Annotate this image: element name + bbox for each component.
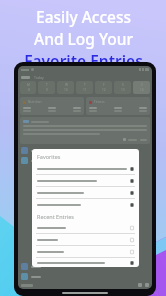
button[interactable]: S (114, 81, 131, 94)
button[interactable] (23, 120, 147, 141)
button[interactable]: Edit (138, 283, 142, 287)
staticText: F (103, 83, 105, 87)
staticText: 12 (102, 88, 106, 92)
button[interactable]: Add entry (32, 258, 139, 267)
staticText: T (46, 83, 48, 87)
button[interactable] (21, 147, 149, 154)
staticText: 10 (64, 88, 68, 92)
button[interactable] (21, 157, 149, 164)
button[interactable]: Add entry (32, 175, 139, 187)
button[interactable]: Delete (145, 283, 149, 287)
staticText: Nutrition (28, 100, 42, 104)
other: Add entry (130, 226, 134, 230)
button[interactable]: W (57, 81, 74, 94)
button[interactable]: Add entry (32, 222, 139, 234)
other: Add entry (130, 261, 134, 265)
staticText: S (122, 83, 124, 87)
staticText: Today (34, 75, 44, 80)
staticText: T (84, 83, 86, 87)
button[interactable]: Add entry (32, 199, 139, 210)
staticText: Favorites (37, 153, 61, 160)
other: Add entry (130, 191, 134, 195)
other: Add entry (130, 167, 134, 171)
other: Add entry (130, 238, 134, 242)
other: Add entry (130, 179, 134, 183)
staticText: Favorite Entries (24, 50, 143, 71)
staticText: S (141, 83, 143, 87)
staticText: 11 (83, 88, 87, 92)
button[interactable]: Add entry (32, 163, 139, 175)
other: Add entry (130, 250, 134, 254)
button[interactable]: Menu (21, 76, 30, 79)
button[interactable]: Nutrition (23, 100, 81, 112)
button[interactable]: M (20, 81, 36, 94)
button[interactable]: F (95, 81, 112, 94)
button[interactable]: Add entry (32, 187, 139, 199)
button[interactable]: Add entry (32, 246, 139, 258)
staticText: 8 (28, 88, 30, 92)
staticText: 13 (121, 88, 125, 92)
button[interactable] (21, 273, 149, 280)
button[interactable]: Fitness (89, 100, 147, 112)
staticText: M (27, 83, 30, 87)
button[interactable] (21, 263, 149, 270)
staticText: Recent Entries (37, 213, 74, 220)
staticText: Easily Access (36, 6, 131, 27)
staticText: W (65, 83, 68, 87)
other: Add entry (130, 203, 134, 207)
staticText: 9 (46, 88, 48, 92)
button[interactable]: Add entry (32, 234, 139, 246)
staticText: And Log Your (34, 28, 133, 49)
staticText: Fitness (94, 100, 105, 104)
staticText: 14 (140, 88, 144, 92)
